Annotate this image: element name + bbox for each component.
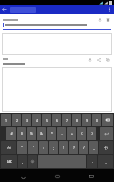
button[interactable]: ? <box>69 141 78 154</box>
button[interactable]: Speak <box>96 16 103 23</box>
button[interactable]: 8 <box>72 114 81 126</box>
staticText: + <box>71 131 73 136</box>
staticText: : <box>43 145 44 150</box>
button[interactable]: " <box>17 141 27 154</box>
button[interactable]: # <box>6 127 16 140</box>
button[interactable]: 4 <box>32 114 41 126</box>
staticText: 8 <box>76 118 78 123</box>
staticText: & <box>40 131 43 136</box>
staticText: . <box>92 159 93 164</box>
button[interactable]: Navigate up <box>0 5 9 14</box>
button[interactable]: ) <box>87 127 96 140</box>
staticText: =\< <box>7 146 11 150</box>
staticText: 9 <box>86 118 88 123</box>
button[interactable]: - <box>57 127 66 140</box>
button[interactable]: Home <box>52 171 62 181</box>
staticText: 6 <box>56 118 58 123</box>
staticText: 1 <box>5 118 7 123</box>
staticText: , <box>22 159 23 164</box>
button[interactable]: =\< <box>1 141 16 154</box>
button[interactable]: Delete <box>102 114 113 126</box>
button[interactable]: Back <box>18 171 28 181</box>
button[interactable]: Share <box>95 56 102 63</box>
button[interactable]: Delete <box>104 16 111 23</box>
staticText: / <box>83 145 85 150</box>
button[interactable]: % <box>27 127 36 140</box>
staticText: # <box>10 131 13 136</box>
button[interactable] <box>2 67 112 112</box>
button[interactable]: More options <box>105 5 114 14</box>
button[interactable]: ( <box>77 127 86 140</box>
button[interactable]: + <box>67 127 76 140</box>
staticText: ~[< <box>104 146 108 150</box>
button[interactable]: . <box>87 155 97 168</box>
button[interactable]: 9 <box>82 114 91 126</box>
button[interactable]: Recent apps <box>86 171 96 181</box>
button[interactable]: 1 <box>1 114 11 126</box>
button[interactable]: $ <box>17 127 26 140</box>
button[interactable]: & <box>37 127 46 140</box>
button[interactable]: Copy <box>104 56 111 63</box>
button[interactable]: 7 <box>62 114 71 126</box>
button[interactable]: 6 <box>52 114 61 126</box>
button[interactable]: 5 <box>42 114 51 126</box>
button[interactable]: ' <box>28 141 38 154</box>
button[interactable]: _ <box>98 155 113 168</box>
button[interactable]: Emoji <box>28 155 37 168</box>
staticText: 0 <box>96 118 98 123</box>
button[interactable]: * <box>47 127 56 140</box>
staticText: $ <box>21 131 23 136</box>
staticText: ? <box>73 145 75 150</box>
button[interactable]: Listen <box>86 56 93 63</box>
button[interactable]: 2 <box>12 114 21 126</box>
staticText: % <box>30 131 33 136</box>
staticText: 3 <box>26 118 28 123</box>
staticText: ( <box>81 131 83 136</box>
staticText: ABC <box>7 160 12 164</box>
staticText: ; <box>53 145 54 150</box>
staticText: _ <box>105 160 107 164</box>
button[interactable]: 0 <box>92 114 101 126</box>
staticText: 2 <box>16 118 18 123</box>
staticText: 4 <box>36 118 38 123</box>
button[interactable]: Enter <box>100 127 113 140</box>
button[interactable]: : <box>39 141 48 154</box>
button[interactable]: 3 <box>22 114 31 126</box>
staticText: - <box>61 131 63 136</box>
staticText: * <box>51 131 53 136</box>
button[interactable]: , <box>18 155 27 168</box>
staticText: ) <box>91 131 93 136</box>
staticText: 7 <box>66 118 68 123</box>
staticText: ' <box>33 145 34 150</box>
button[interactable]: / <box>79 141 88 154</box>
button[interactable]: ABC <box>1 155 17 168</box>
button[interactable]: _ <box>89 141 98 154</box>
button[interactable]: ; <box>49 141 58 154</box>
staticText: ! <box>63 145 64 150</box>
staticText: " <box>21 145 23 150</box>
staticText: _ <box>93 145 95 150</box>
staticText: 5 <box>46 118 48 123</box>
button[interactable]: ! <box>59 141 68 154</box>
button[interactable]: ~[< <box>99 141 113 154</box>
button[interactable] <box>2 33 112 55</box>
